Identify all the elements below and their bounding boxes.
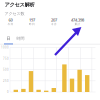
staticText: 474,398 xyxy=(71,17,84,23)
staticText: 197 xyxy=(29,17,35,23)
staticText: アクセス解析 xyxy=(4,1,34,8)
staticText: 250 xyxy=(3,79,9,83)
button[interactable]: 474,398 xyxy=(65,17,90,26)
staticText: 今月 xyxy=(51,23,57,26)
staticText: 500 xyxy=(3,68,9,71)
button[interactable]: 207 xyxy=(43,17,65,26)
staticText: 日 xyxy=(6,36,10,41)
button[interactable]: 60 xyxy=(0,17,21,26)
staticText: 0 xyxy=(7,90,9,94)
staticText: 今日 xyxy=(7,23,13,26)
staticText: 1000 xyxy=(1,46,9,49)
button[interactable]: 時間 xyxy=(15,33,26,44)
staticText: 750 xyxy=(3,57,9,60)
staticText: 207 xyxy=(51,17,57,23)
button[interactable]: 日 xyxy=(3,33,14,44)
staticText: 昨日 xyxy=(29,23,35,26)
staticText: 時間 xyxy=(16,36,24,41)
staticText: 60 xyxy=(8,17,12,23)
staticText: 累計 xyxy=(74,23,80,26)
button[interactable]: 197 xyxy=(21,17,43,26)
staticText: アクセス数 xyxy=(4,11,24,16)
